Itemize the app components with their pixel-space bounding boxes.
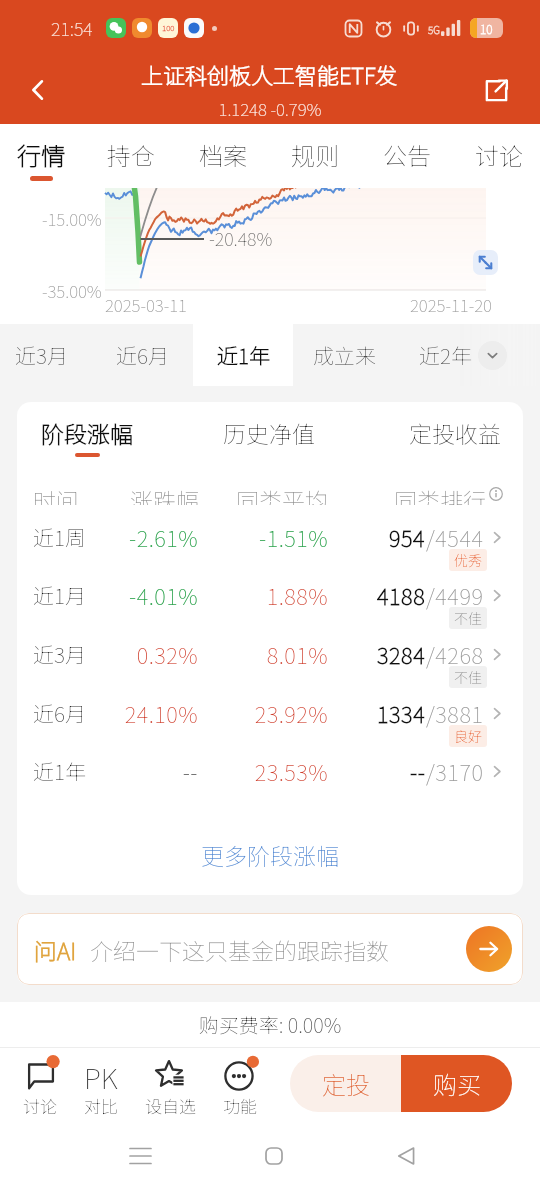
button[interactable]: 档案 <box>178 124 268 188</box>
staticText: 档案 <box>199 137 247 172</box>
button[interactable]: 成立来 <box>294 324 394 386</box>
button[interactable]: 近6月 <box>92 324 192 386</box>
staticText: 购买费率: 0.00% <box>0 1010 540 1039</box>
staticText: 同类排行 <box>394 483 486 505</box>
staticText: 阶段涨幅 <box>41 416 133 449</box>
staticText: 954 <box>389 521 426 553</box>
staticText: 不佳 <box>454 608 482 628</box>
staticText: -20.48% <box>209 225 273 251</box>
staticText: /4499 <box>426 579 484 611</box>
button[interactable]: 设自选 <box>136 1053 204 1117</box>
button[interactable]: 功能 <box>206 1053 274 1117</box>
staticText: 近6月 <box>116 340 169 370</box>
button[interactable]: 定投 <box>290 1055 401 1112</box>
staticText: /4268 <box>426 638 484 670</box>
staticText: 时间 <box>33 483 79 505</box>
staticText: 上证科创板人工智能ETF发 <box>141 58 398 88</box>
staticText: -- <box>17 755 198 787</box>
staticText: 良好 <box>454 726 482 746</box>
staticText: 优秀 <box>454 550 482 570</box>
staticText: 功能 <box>223 1093 257 1117</box>
staticText: 21:54 <box>51 15 93 41</box>
staticText: -4.01% <box>17 579 198 611</box>
button[interactable]: 定投收益 <box>395 412 515 460</box>
staticText: 近1月 <box>33 580 86 610</box>
staticText: -35.00% <box>42 278 102 303</box>
button[interactable]: 近6月 <box>17 695 523 731</box>
button[interactable]: 讨论 <box>454 124 540 188</box>
staticText: 8.01% <box>17 638 328 670</box>
staticText: 问AI <box>34 933 77 966</box>
staticText: 同类平均 <box>17 483 328 505</box>
staticText: 5G <box>428 22 440 36</box>
button[interactable]: 历史净值 <box>209 412 329 460</box>
button[interactable]: PK <box>67 1053 135 1117</box>
staticText: 24.10% <box>17 697 198 729</box>
button[interactable]: 近2年 <box>395 324 495 386</box>
button[interactable]: 行情 <box>0 124 86 188</box>
staticText: 2025-03-11 <box>105 292 187 317</box>
staticText: 成立来 <box>313 340 376 370</box>
staticText: 介绍一下这只基金的跟踪指数 <box>90 933 389 966</box>
staticText: /4544 <box>426 521 484 553</box>
staticText: PK <box>84 1057 118 1091</box>
button[interactable]: 讨论 <box>6 1053 74 1117</box>
staticText: 不佳 <box>454 667 482 687</box>
staticText: 讨论 <box>23 1093 57 1117</box>
staticText: 1.88% <box>17 579 328 611</box>
staticText: -15.00% <box>42 206 102 231</box>
staticText: 3284 <box>377 638 426 670</box>
staticText: 规则 <box>291 137 339 172</box>
button[interactable]: 问AI <box>17 913 523 985</box>
staticText: 0.32% <box>17 638 198 670</box>
staticText: -1.51% <box>17 521 328 553</box>
staticText: 定投收益 <box>409 416 501 449</box>
staticText: 2025-11-20 <box>410 292 492 317</box>
button[interactable]: Back <box>16 68 60 112</box>
staticText: 公告 <box>383 137 431 172</box>
button[interactable]: 近3月 <box>0 324 91 386</box>
button[interactable]: Fullscreen <box>473 250 498 275</box>
button[interactable]: Home <box>252 1134 296 1178</box>
staticText: /3881 <box>426 697 484 729</box>
staticText: 对比 <box>84 1093 118 1117</box>
button[interactable]: 近1年 <box>193 324 293 386</box>
staticText: 23.53% <box>17 755 328 787</box>
button[interactable]: 近1月 <box>17 577 523 613</box>
staticText: 持仓 <box>107 137 155 172</box>
staticText: /3170 <box>426 755 484 787</box>
staticText: -- <box>410 755 426 787</box>
staticText: 1.1248 -0.79% <box>0 96 540 121</box>
staticText: 近2年 <box>419 340 472 370</box>
staticText: 23.92% <box>17 697 328 729</box>
button[interactable]: 更多阶段涨幅 <box>17 838 523 878</box>
staticText: 涨跌幅 <box>17 483 199 505</box>
staticText: 4188 <box>377 579 426 611</box>
button[interactable]: 持仓 <box>86 124 176 188</box>
staticText: 近1周 <box>33 522 86 552</box>
button[interactable]: 近1周 <box>17 519 523 555</box>
button[interactable]: More ranges <box>478 341 507 370</box>
button[interactable]: Share <box>474 68 518 112</box>
button[interactable]: 公告 <box>362 124 452 188</box>
staticText: 更多阶段涨幅 <box>201 838 339 871</box>
staticText: 近3月 <box>33 639 86 669</box>
button[interactable]: 规则 <box>270 124 360 188</box>
staticText: -2.61% <box>17 521 198 553</box>
staticText: 1334 <box>377 697 426 729</box>
button[interactable]: 近1年 <box>17 753 523 789</box>
staticText: 近3月 <box>15 340 68 370</box>
staticText: 购买 <box>433 1066 481 1101</box>
staticText: 100 <box>162 22 175 34</box>
button[interactable]: Recents <box>118 1134 162 1178</box>
button[interactable]: 购买 <box>401 1055 512 1112</box>
staticText: 10 <box>480 20 493 37</box>
staticText: 近6月 <box>33 698 86 728</box>
button[interactable]: Back <box>384 1134 428 1178</box>
staticText: 近1年 <box>217 340 270 370</box>
staticText: 行情 <box>17 137 65 172</box>
button[interactable]: 阶段涨幅 <box>27 412 147 460</box>
button[interactable]: 近3月 <box>17 636 523 672</box>
staticText: 讨论 <box>475 137 523 172</box>
staticText: 历史净值 <box>223 416 315 449</box>
